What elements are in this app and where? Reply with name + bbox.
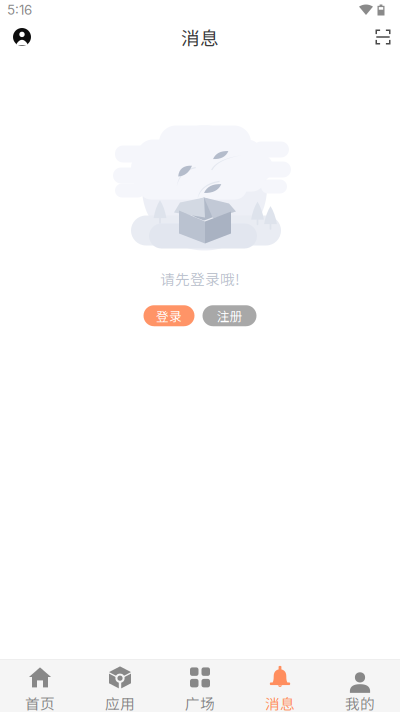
- staticText: 消息: [181, 23, 219, 50]
- button[interactable]: 注册: [202, 305, 256, 326]
- button[interactable]: 消息: [240, 659, 320, 712]
- button[interactable]: 首页: [0, 659, 80, 712]
- button[interactable]: Scan: [363, 20, 400, 54]
- staticText: 请先登录哦!: [160, 268, 240, 289]
- button[interactable]: Profile: [0, 20, 44, 54]
- staticText: 消息: [265, 692, 295, 712]
- staticText: 登录: [156, 307, 182, 325]
- button[interactable]: 应用: [80, 659, 160, 712]
- staticText: 我的: [345, 692, 375, 712]
- staticText: 首页: [25, 692, 55, 712]
- staticText: 广场: [185, 692, 215, 712]
- button[interactable]: 我的: [320, 659, 400, 712]
- staticText: 注册: [216, 307, 242, 325]
- staticText: 应用: [105, 692, 135, 712]
- button[interactable]: 广场: [160, 659, 240, 712]
- staticText: 5:16: [7, 2, 32, 18]
- button[interactable]: 登录: [143, 305, 194, 326]
